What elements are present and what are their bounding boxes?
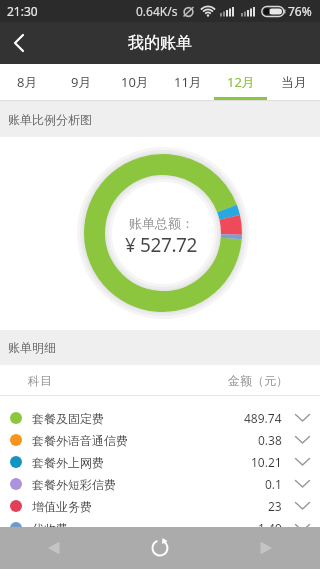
staticText: 科目 [28, 373, 52, 388]
button[interactable]: 8月 [0, 64, 54, 100]
staticText: 12月 [227, 73, 255, 91]
button[interactable] [40, 534, 68, 562]
staticText: 489.74 [244, 410, 282, 426]
button[interactable]: 套餐及固定费 [0, 407, 320, 429]
staticText: 11月 [174, 73, 202, 91]
button[interactable]: 套餐外短彩信费 [0, 473, 320, 495]
staticText: 8月 [17, 73, 38, 91]
staticText: ¥ 527.72 [125, 232, 198, 258]
staticText: 套餐及固定费 [32, 411, 104, 426]
button[interactable] [145, 533, 175, 563]
button[interactable] [0, 23, 40, 63]
button[interactable]: 当月 [267, 64, 320, 100]
staticText: 76% [288, 3, 312, 19]
button[interactable]: 代收费 [0, 517, 320, 539]
staticText: 套餐外短彩信费 [32, 477, 116, 492]
staticText: 21:30 [7, 3, 38, 19]
button[interactable]: 套餐外语音通信费 [0, 429, 320, 451]
staticText: 0.38 [258, 432, 282, 448]
staticText: 0.1 [265, 476, 282, 492]
staticText: 当月 [281, 74, 307, 90]
staticText: 10月 [121, 73, 149, 91]
staticText: 代收费 [32, 521, 68, 536]
staticText: 23 [268, 498, 282, 514]
button[interactable]: 套餐外上网费 [0, 451, 320, 473]
button[interactable]: 12月 [214, 64, 267, 100]
button[interactable] [252, 534, 280, 562]
button[interactable]: 10月 [108, 64, 161, 100]
staticText: 金额（元） [228, 373, 288, 388]
button[interactable]: 增值业务费 [0, 495, 320, 517]
staticText: 增值业务费 [32, 499, 92, 514]
staticText: 套餐外上网费 [32, 455, 104, 470]
staticText: 账单比例分析图 [8, 112, 92, 127]
staticText: 账单总额： [129, 215, 194, 231]
staticText: 套餐外语音通信费 [32, 433, 128, 448]
staticText: 账单明细 [8, 340, 56, 355]
staticText: 0.64K/s [136, 3, 178, 19]
button[interactable]: 11月 [161, 64, 214, 100]
staticText: 10.21 [251, 454, 282, 470]
staticText: 9月 [71, 73, 92, 91]
staticText: 我的账单 [128, 33, 192, 53]
staticText: 1.49 [258, 520, 282, 536]
button[interactable]: 9月 [54, 64, 108, 100]
